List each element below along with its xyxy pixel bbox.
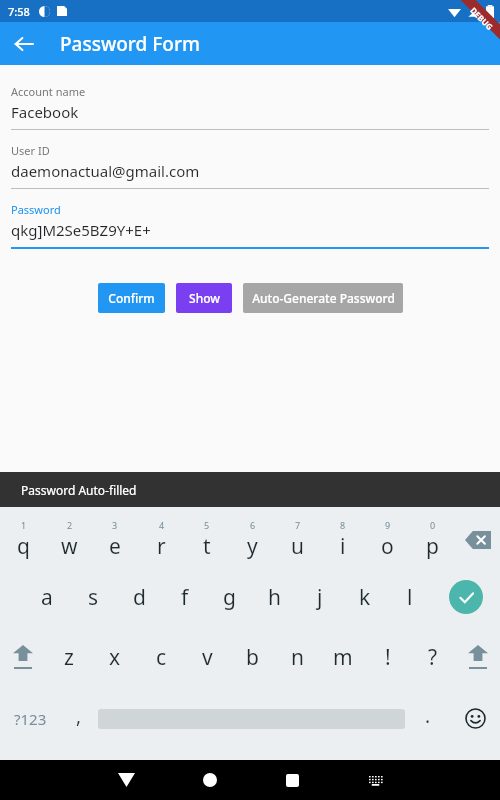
staticText: y — [247, 532, 258, 561]
staticText: g — [223, 583, 236, 612]
button[interactable]: , — [60, 687, 98, 750]
button[interactable]: Enter — [432, 567, 500, 627]
button[interactable]: 4 — [138, 509, 184, 567]
button[interactable]: j — [297, 567, 342, 627]
staticText: Password — [11, 202, 61, 217]
staticText: a — [41, 583, 53, 612]
staticText: Auto-Generate Password — [252, 290, 395, 306]
staticText: Show — [189, 290, 220, 306]
button[interactable]: 9 — [365, 509, 410, 567]
staticText: Facebook — [11, 102, 79, 122]
staticText: q — [17, 532, 30, 561]
button[interactable]: ! — [365, 627, 410, 687]
button[interactable]: h — [252, 567, 297, 627]
staticText: n — [291, 643, 304, 672]
staticText: u — [291, 532, 304, 561]
button[interactable]: 2 — [46, 509, 92, 567]
button[interactable]: Show — [176, 283, 232, 313]
button[interactable]: g — [207, 567, 252, 627]
button[interactable]: 5 — [184, 509, 230, 567]
staticText: 5 — [204, 519, 210, 531]
staticText: 0 — [430, 519, 436, 531]
button[interactable]: l — [387, 567, 432, 627]
button[interactable]: 0 — [410, 509, 455, 567]
staticText: Confirm — [108, 290, 155, 306]
button[interactable]: Shift — [0, 627, 46, 687]
staticText: x — [109, 643, 121, 672]
button[interactable]: c — [138, 627, 184, 687]
staticText: ! — [385, 643, 391, 672]
staticText: e — [109, 532, 121, 561]
staticText: User ID — [11, 143, 50, 158]
button[interactable]: Confirm — [98, 283, 165, 313]
staticText: i — [340, 532, 346, 561]
button[interactable]: 6 — [230, 509, 275, 567]
staticText: k — [359, 583, 371, 612]
button[interactable]: 1 — [0, 509, 46, 567]
staticText: j — [317, 583, 323, 612]
staticText: 3 — [112, 519, 118, 531]
staticText: 7:58 — [8, 4, 30, 19]
button[interactable]: ?123 — [0, 687, 60, 750]
staticText: h — [268, 583, 281, 612]
staticText: m — [333, 643, 353, 672]
button[interactable]: ? — [410, 627, 455, 687]
button[interactable]: Password Auto-filled — [0, 472, 500, 507]
staticText: 2 — [67, 519, 73, 531]
staticText: s — [88, 583, 99, 612]
button[interactable]: Shift — [455, 627, 500, 687]
button[interactable]: . — [405, 687, 450, 750]
button[interactable]: v — [184, 627, 230, 687]
staticText: 7 — [295, 519, 301, 531]
button[interactable]: m — [320, 627, 365, 687]
button[interactable]: z — [46, 627, 92, 687]
staticText: , — [76, 703, 82, 729]
button[interactable]: Account name — [11, 84, 489, 130]
staticText: daemonactual@gmail.com — [11, 161, 200, 181]
button[interactable]: Keyboard switcher — [334, 760, 417, 800]
button[interactable]: d — [116, 567, 162, 627]
staticText: o — [381, 532, 394, 561]
button[interactable]: 3 — [92, 509, 138, 567]
button[interactable]: x — [92, 627, 138, 687]
button[interactable]: User ID — [11, 143, 489, 189]
button[interactable]: Emoji — [450, 687, 500, 750]
staticText: ? — [428, 643, 438, 672]
staticText: b — [246, 643, 259, 672]
staticText: Password Auto-filled — [21, 482, 137, 498]
button[interactable]: Home — [168, 760, 251, 800]
button[interactable]: b — [230, 627, 275, 687]
staticText: DEBUG — [468, 5, 496, 32]
button[interactable]: Back — [84, 760, 168, 800]
button[interactable]: Back — [0, 22, 48, 65]
staticText: ?123 — [14, 709, 47, 729]
button[interactable]: s — [70, 567, 116, 627]
staticText: 4 — [159, 519, 165, 531]
staticText: d — [133, 583, 146, 612]
staticText: p — [426, 532, 439, 561]
button[interactable]: Recents — [251, 760, 334, 800]
staticText: Password Form — [60, 31, 200, 57]
button[interactable]: Auto-Generate Password — [243, 283, 403, 313]
staticText: r — [157, 532, 166, 561]
button[interactable]: Password — [11, 202, 489, 249]
staticText: v — [202, 643, 213, 672]
staticText: Account name — [11, 84, 86, 99]
staticText: t — [203, 532, 211, 561]
button[interactable]: k — [342, 567, 387, 627]
button[interactable]: 8 — [320, 509, 365, 567]
button[interactable]: f — [162, 567, 207, 627]
button[interactable]: 7 — [275, 509, 320, 567]
staticText: 6 — [250, 519, 256, 531]
button[interactable]: Backspace — [455, 509, 500, 567]
staticText: l — [407, 583, 413, 612]
staticText: 8 — [340, 519, 346, 531]
button[interactable]: n — [275, 627, 320, 687]
button[interactable]: a — [24, 567, 70, 627]
staticText: w — [61, 532, 78, 561]
staticText: qkg]M2Se5BZ9Y+E+ — [11, 220, 151, 240]
staticText: c — [156, 643, 167, 672]
button[interactable]: Space — [98, 687, 405, 750]
staticText: . — [425, 703, 431, 729]
staticText: f — [181, 583, 189, 612]
